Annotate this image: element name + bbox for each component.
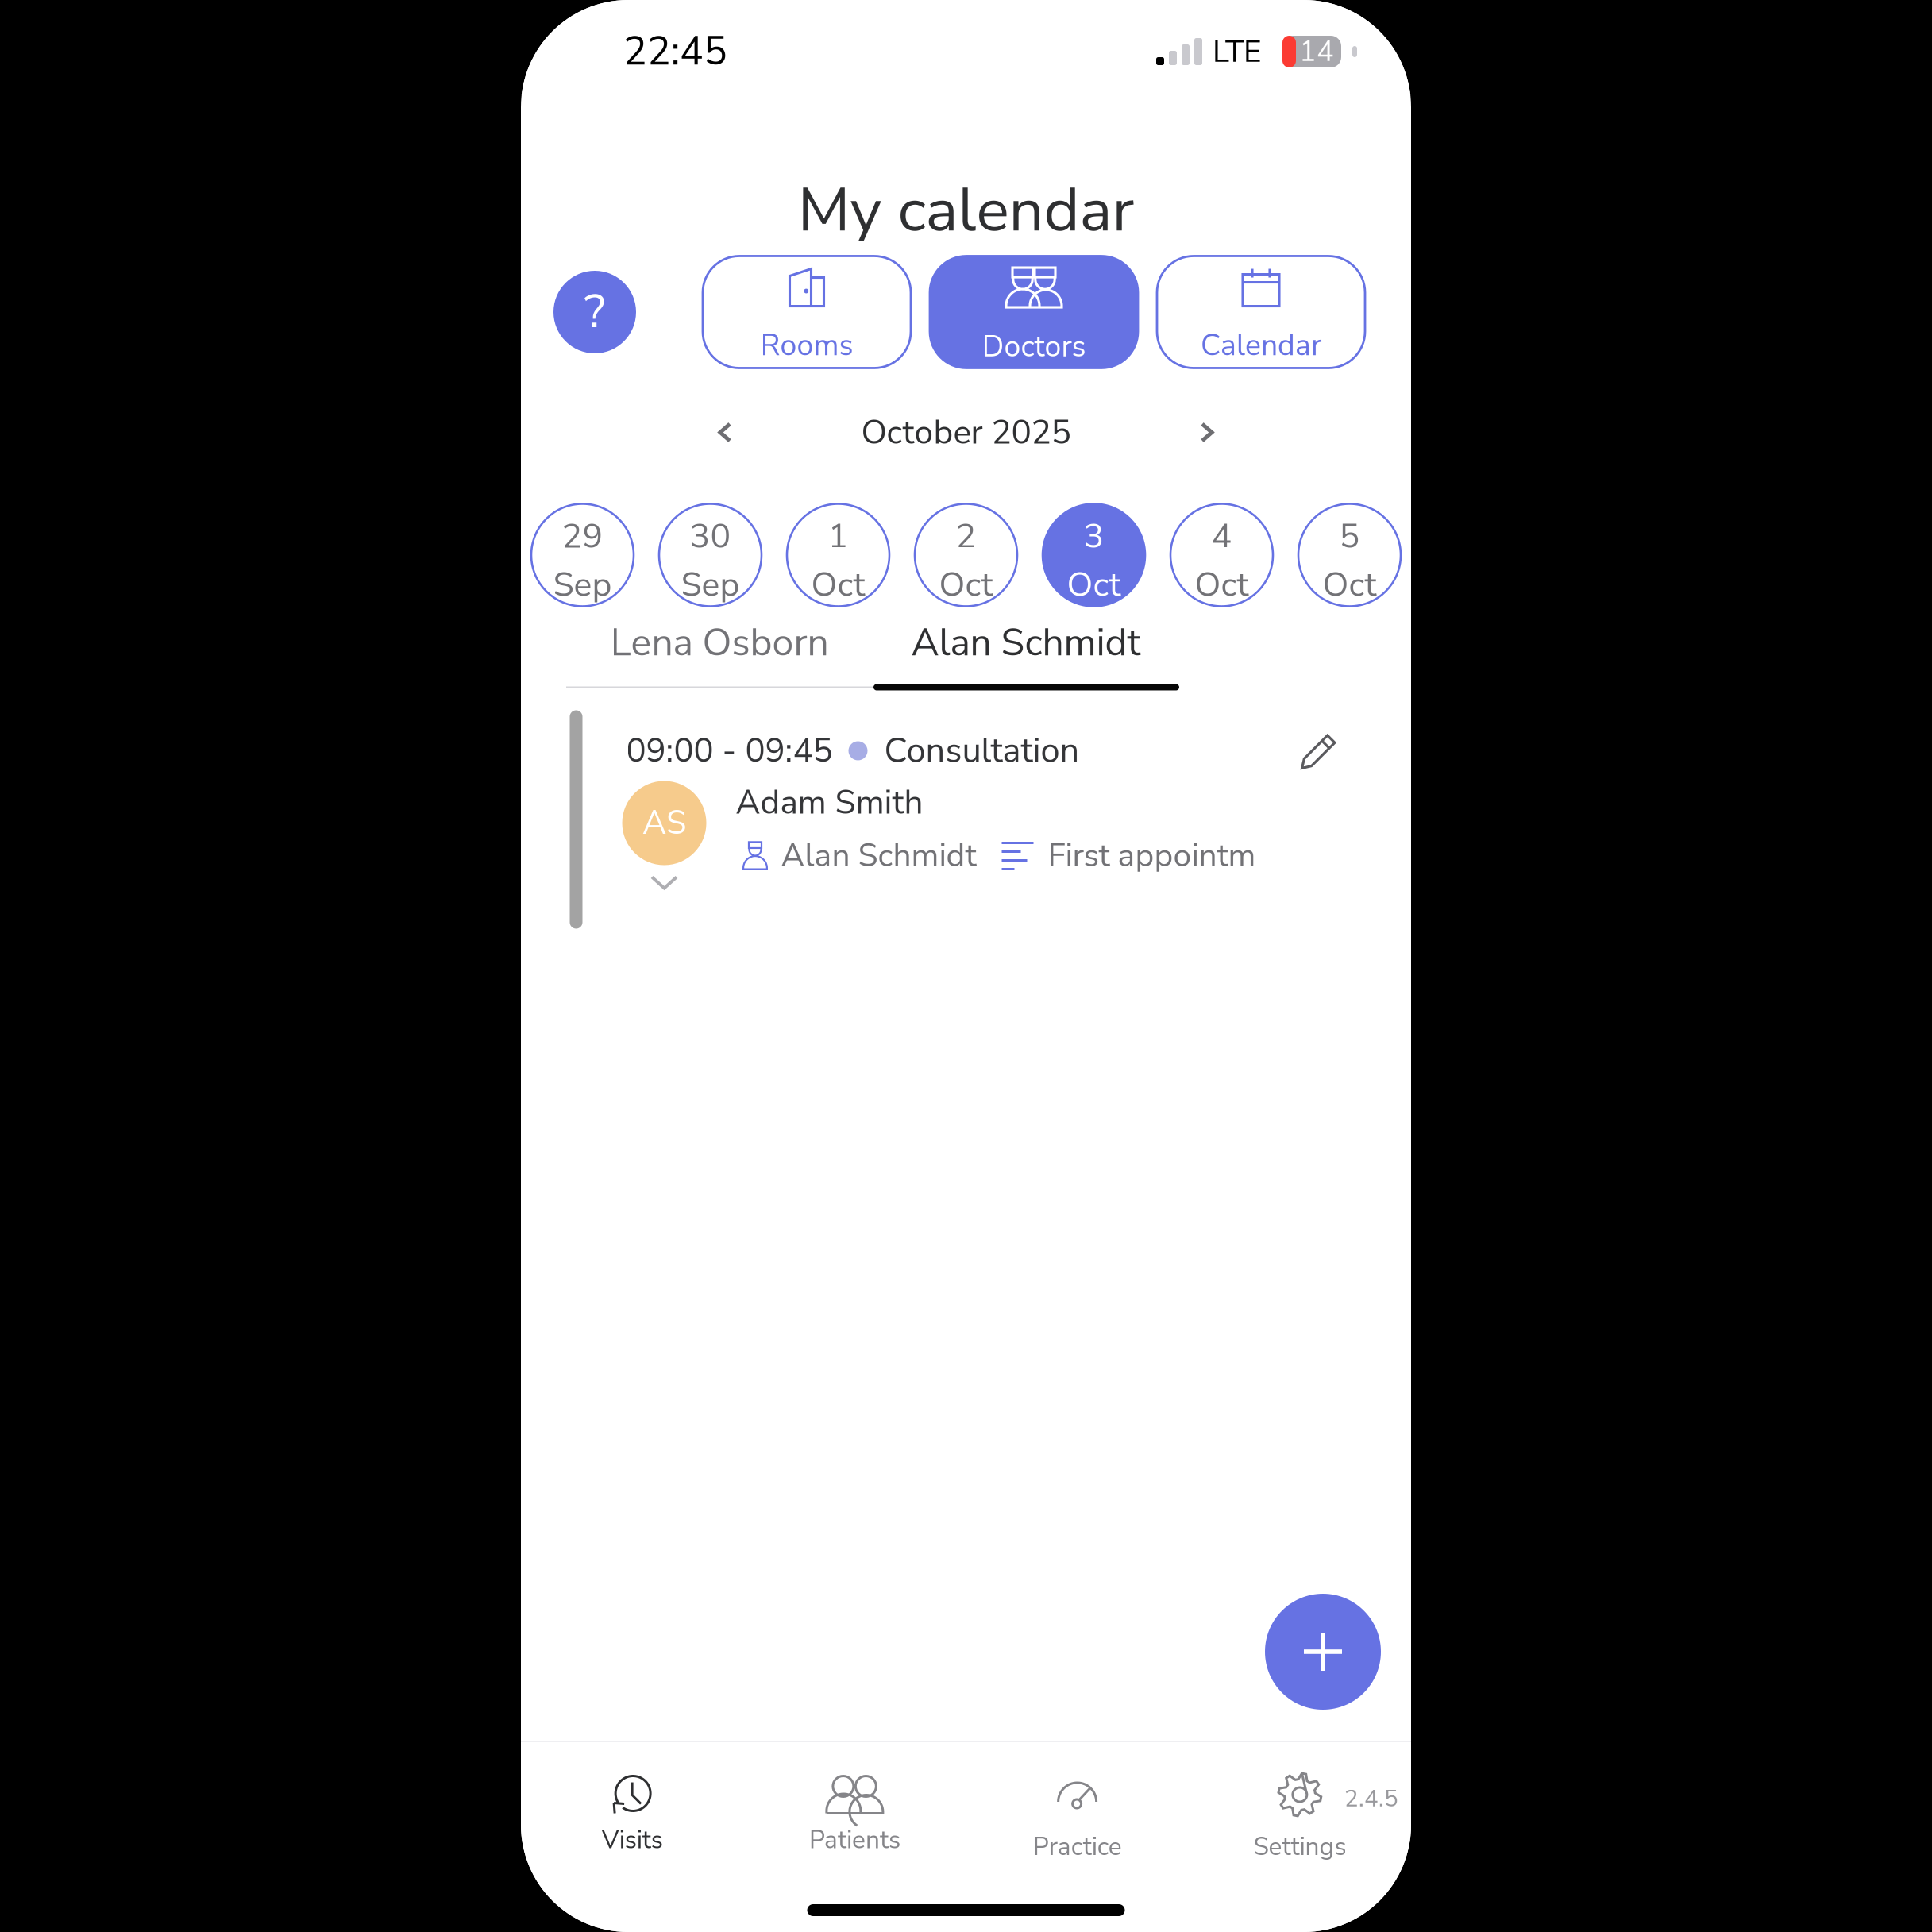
staticText: Doctors	[982, 326, 1086, 367]
button[interactable]: 3	[1043, 504, 1145, 606]
staticText: 22:45	[623, 25, 727, 78]
staticText: Oct	[1323, 562, 1377, 608]
button[interactable]: Alan Schmidt	[873, 625, 1179, 660]
button[interactable]: Visits	[521, 1765, 743, 1867]
button[interactable]: Practice	[966, 1758, 1189, 1873]
staticText: 2.4.5	[1344, 1783, 1398, 1814]
button[interactable]: 30	[659, 504, 762, 606]
staticText: My calendar	[798, 168, 1134, 252]
button[interactable]: Rooms	[703, 256, 911, 368]
staticText: 2	[956, 513, 976, 559]
button[interactable]: Calendar	[1157, 256, 1365, 368]
staticText: 09:00 - 09:45	[626, 728, 833, 773]
staticText: Sep	[681, 562, 740, 608]
staticText: LTE	[1213, 31, 1262, 72]
button[interactable]: 09:00 - 09:45	[570, 710, 1362, 929]
button[interactable]: Next month	[1200, 422, 1214, 443]
staticText: Visits	[602, 1823, 663, 1857]
staticText: 5	[1339, 513, 1360, 559]
staticText: Practice	[1033, 1830, 1122, 1864]
button[interactable]: Add appointment	[1265, 1594, 1381, 1710]
button[interactable]: Settings	[1189, 1758, 1411, 1873]
staticText: 1	[828, 513, 848, 559]
staticText: Oct	[939, 562, 993, 608]
staticText: October 2025	[861, 410, 1071, 455]
staticText: Sep	[553, 562, 612, 608]
staticText: 29	[562, 513, 603, 559]
staticText: Calendar	[1201, 325, 1321, 366]
staticText: Settings	[1253, 1830, 1346, 1864]
button[interactable]: Lena Osborn	[566, 625, 873, 660]
staticText: AS	[642, 801, 686, 845]
staticText: Rooms	[760, 325, 853, 366]
button[interactable]: 2	[915, 504, 1017, 606]
staticText: Alan Schmidt	[911, 617, 1141, 669]
staticText: First appointm	[1048, 834, 1256, 878]
staticText: 3	[1084, 513, 1104, 559]
button[interactable]: 29	[531, 504, 634, 606]
staticText: 4	[1211, 513, 1232, 559]
staticText: Lena Osborn	[610, 617, 829, 669]
staticText: Patients	[809, 1823, 900, 1857]
staticText: 14	[1299, 32, 1334, 71]
button[interactable]: Patients	[743, 1765, 966, 1867]
staticText: 30	[690, 513, 731, 559]
button[interactable]: 5	[1298, 504, 1401, 606]
staticText: Oct	[811, 562, 865, 608]
button[interactable]: 4	[1170, 504, 1273, 606]
staticText: Oct	[1195, 562, 1249, 608]
staticText: Adam Smith	[736, 780, 923, 825]
staticText: ?	[584, 280, 605, 344]
button[interactable]: Previous month	[718, 422, 732, 443]
staticText: Alan Schmidt	[781, 834, 976, 878]
button[interactable]: Help	[553, 271, 636, 353]
button[interactable]: 1	[787, 504, 889, 606]
staticText: Oct	[1067, 562, 1121, 608]
button[interactable]: Doctors	[930, 256, 1138, 368]
staticText: Consultation	[884, 727, 1080, 774]
